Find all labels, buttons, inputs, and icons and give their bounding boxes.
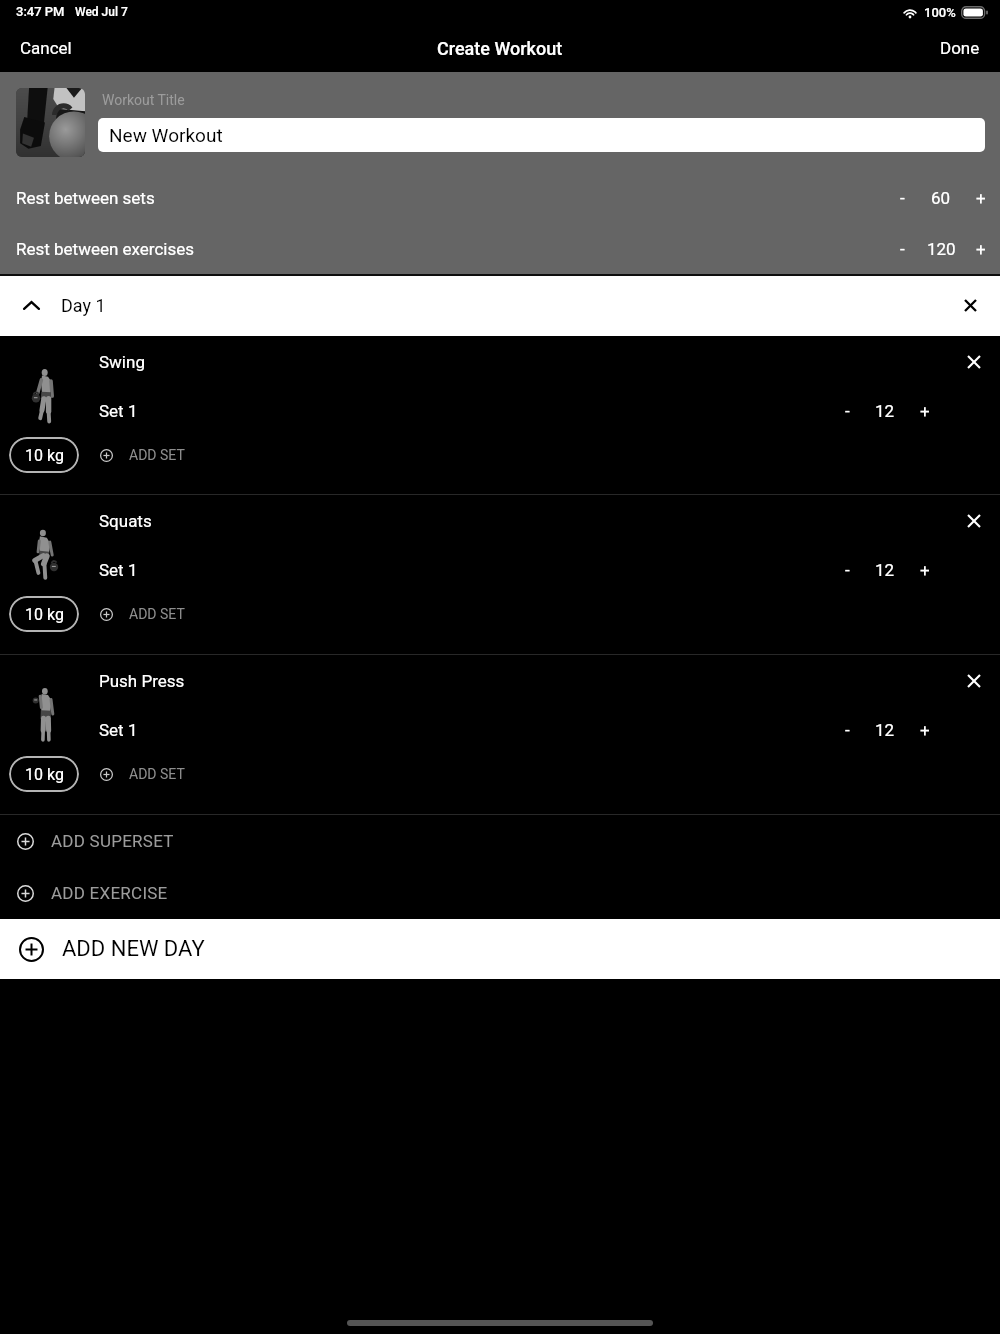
button[interactable]: Remove exercise bbox=[954, 342, 994, 382]
button[interactable]: Increase reps bbox=[905, 391, 945, 431]
staticText: - bbox=[845, 560, 850, 580]
button[interactable]: ADD NEW DAY bbox=[0, 919, 1000, 979]
staticText: Day 1 bbox=[61, 295, 106, 316]
staticText: ADD SET bbox=[129, 606, 185, 622]
staticText: Create Workout bbox=[437, 38, 563, 59]
staticText: - bbox=[900, 239, 905, 259]
staticText: + bbox=[920, 720, 930, 740]
button[interactable]: 10 kg bbox=[9, 437, 79, 473]
staticText: Swing bbox=[99, 352, 145, 372]
staticText: + bbox=[976, 188, 986, 208]
button[interactable]: Increase reps bbox=[905, 710, 945, 750]
button[interactable]: 10 kg bbox=[9, 596, 79, 632]
staticText: Workout Title bbox=[102, 92, 185, 108]
staticText: - bbox=[845, 720, 850, 740]
staticText: 60 bbox=[931, 188, 951, 208]
staticText: ADD SUPERSET bbox=[51, 831, 174, 851]
staticText: 10 kg bbox=[25, 765, 64, 784]
button[interactable]: Remove exercise bbox=[954, 501, 994, 541]
button[interactable]: ADD EXERCISE bbox=[0, 867, 1000, 919]
button[interactable]: Done bbox=[922, 28, 1000, 72]
button[interactable]: Remove exercise bbox=[954, 661, 994, 701]
staticText: ADD EXERCISE bbox=[51, 883, 168, 903]
staticText: Set 1 bbox=[99, 560, 138, 580]
staticText: Squats bbox=[99, 511, 152, 531]
staticText: Wed Jul 7 bbox=[75, 5, 128, 19]
button[interactable]: Decrease rest bbox=[882, 178, 922, 218]
button[interactable]: 10 kg bbox=[9, 756, 79, 792]
staticText: - bbox=[845, 401, 850, 421]
button[interactable]: Day 1 bbox=[0, 276, 1000, 336]
staticText: 10 kg bbox=[25, 446, 64, 465]
staticText: + bbox=[976, 239, 986, 259]
staticText: 3:47 PM bbox=[16, 4, 65, 19]
button[interactable]: Decrease reps bbox=[827, 391, 867, 431]
staticText: Set 1 bbox=[99, 720, 138, 740]
staticText: Rest between exercises bbox=[16, 239, 195, 259]
staticText: + bbox=[920, 560, 930, 580]
staticText: Push Press bbox=[99, 671, 185, 691]
staticText: 12 bbox=[875, 560, 895, 580]
staticText: Rest between sets bbox=[16, 188, 155, 208]
staticText: + bbox=[920, 401, 930, 421]
button[interactable]: Decrease rest bbox=[882, 229, 922, 269]
button[interactable]: ADD SET bbox=[91, 437, 197, 473]
button[interactable]: Rest between sets bbox=[0, 172, 1000, 223]
staticText: 100% bbox=[924, 5, 956, 20]
button[interactable]: ADD SUPERSET bbox=[0, 815, 1000, 867]
button[interactable]: Cancel bbox=[0, 28, 90, 72]
staticText: 10 kg bbox=[25, 605, 64, 624]
staticText: ADD NEW DAY bbox=[62, 936, 205, 962]
button[interactable]: Decrease reps bbox=[827, 710, 867, 750]
button[interactable]: Rest between exercises bbox=[0, 223, 1000, 274]
staticText: ADD SET bbox=[129, 447, 185, 463]
button[interactable]: Increase rest bbox=[961, 178, 1000, 218]
staticText: 12 bbox=[875, 401, 895, 421]
staticText: New Workout bbox=[109, 124, 223, 146]
button[interactable]: Decrease reps bbox=[827, 550, 867, 590]
staticText: ADD SET bbox=[129, 766, 185, 782]
staticText: Set 1 bbox=[99, 401, 138, 421]
button[interactable]: Remove day bbox=[950, 285, 990, 325]
staticText: Done bbox=[940, 38, 980, 58]
button[interactable]: ADD SET bbox=[91, 756, 197, 792]
staticText: 12 bbox=[875, 720, 895, 740]
staticText: Cancel bbox=[20, 38, 72, 58]
staticText: - bbox=[900, 188, 905, 208]
button[interactable]: Increase rest bbox=[961, 229, 1000, 269]
button[interactable]: New Workout bbox=[98, 118, 985, 152]
staticText: 120 bbox=[927, 239, 956, 259]
button[interactable]: ADD SET bbox=[91, 596, 197, 632]
button[interactable]: Increase reps bbox=[905, 550, 945, 590]
